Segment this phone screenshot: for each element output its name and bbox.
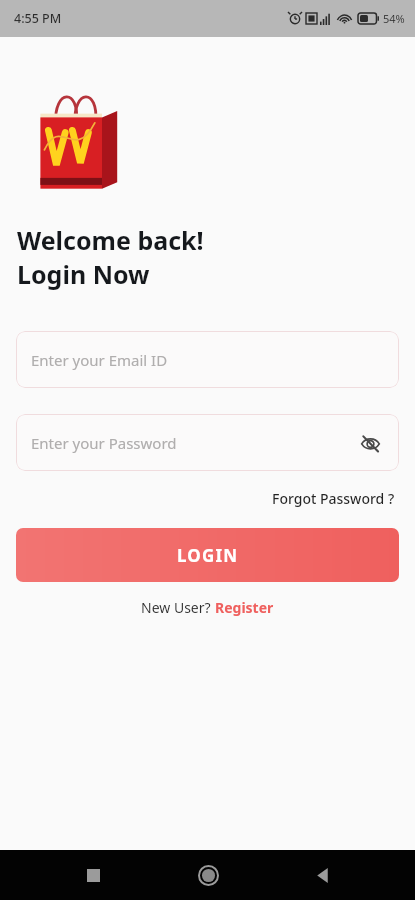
button[interactable]: Show password — [355, 428, 385, 458]
staticText: Enter your Password — [31, 433, 177, 453]
button[interactable]: LOGIN — [16, 528, 399, 582]
staticText: Forgot Password ? — [272, 489, 395, 508]
button[interactable]: Enter your Email ID — [16, 331, 399, 388]
button[interactable]: Register — [215, 598, 274, 617]
staticText: 4:55 PM — [14, 10, 62, 27]
staticText: LOGIN — [177, 544, 239, 567]
button[interactable]: Enter your Password — [16, 414, 399, 471]
button[interactable]: Back — [300, 853, 344, 897]
staticText: Enter your Email ID — [31, 350, 168, 370]
staticText: Welcome back! — [17, 223, 204, 257]
button[interactable]: Forgot Password ? — [268, 485, 399, 512]
staticText: 54% — [383, 11, 405, 26]
staticText: Register — [215, 598, 274, 617]
button[interactable]: Home — [186, 853, 230, 897]
staticText: Login Now — [17, 257, 150, 291]
staticText: New User? — [141, 598, 215, 617]
button[interactable]: Recents — [71, 853, 115, 897]
